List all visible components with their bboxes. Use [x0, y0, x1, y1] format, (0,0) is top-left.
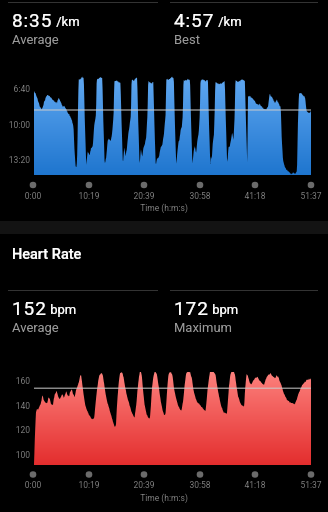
staticText: Average	[12, 320, 59, 335]
staticText: 10:19	[69, 480, 109, 490]
staticText: bpm	[209, 302, 239, 317]
staticText: Best	[174, 32, 200, 47]
staticText: 4:57	[174, 9, 215, 31]
staticText: 20:39	[124, 480, 164, 490]
staticText: 13:20	[0, 155, 30, 165]
staticText: 172	[174, 297, 209, 319]
staticText: 8:35	[12, 9, 53, 31]
staticText: 10:00	[0, 120, 30, 130]
staticText: 120	[0, 425, 30, 435]
staticText: 6:40	[0, 84, 30, 94]
staticText: bpm	[47, 302, 77, 317]
staticText: Maximum	[174, 320, 232, 335]
staticText: 51:37	[291, 191, 328, 201]
staticText: 30:58	[180, 191, 220, 201]
staticText: 30:58	[180, 480, 220, 490]
staticText: 41:18	[235, 191, 275, 201]
staticText: 0:00	[13, 480, 53, 490]
staticText: Average	[12, 32, 59, 47]
staticText: 41:18	[235, 480, 275, 490]
staticText: 152	[12, 297, 47, 319]
staticText: Heart Rate	[12, 246, 82, 263]
staticText: Time (h:m:s)	[0, 203, 328, 213]
staticText: /km	[53, 14, 80, 29]
staticText: Time (h:m:s)	[0, 493, 328, 503]
staticText: 10:19	[69, 191, 109, 201]
staticText: 20:39	[124, 191, 164, 201]
staticText: 0:00	[13, 191, 53, 201]
staticText: 100	[0, 450, 30, 460]
staticText: /km	[215, 14, 242, 29]
staticText: 140	[0, 401, 30, 411]
staticText: 160	[0, 376, 30, 386]
staticText: 51:37	[291, 480, 328, 490]
